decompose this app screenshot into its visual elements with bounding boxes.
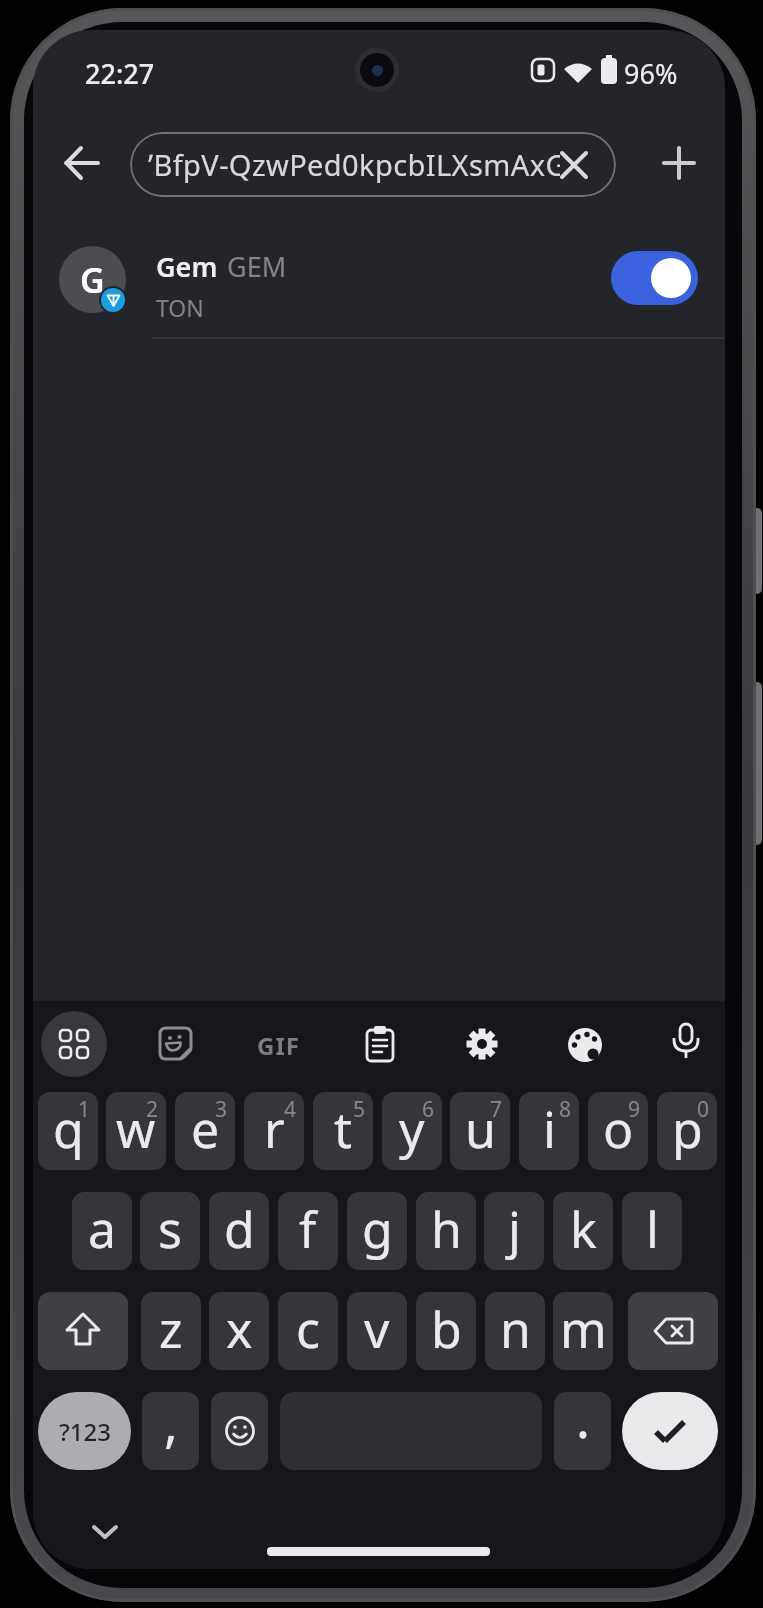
button[interactable]: a [72, 1192, 132, 1270]
button[interactable] [211, 1392, 268, 1470]
button[interactable] [52, 133, 112, 193]
staticText: Gem [156, 248, 218, 285]
staticText: TON [156, 292, 204, 323]
staticText: , [164, 1392, 178, 1457]
button[interactable]: ?123 [38, 1392, 131, 1470]
button[interactable] [158, 1026, 194, 1062]
staticText: G [80, 257, 105, 303]
staticText: ʼBfpV-QzwPed0kpcbILXsmAxG [148, 145, 560, 184]
staticText: b [431, 1295, 462, 1363]
button[interactable]: t [313, 1092, 373, 1170]
button[interactable]: r [244, 1092, 304, 1170]
button[interactable]: d [209, 1192, 269, 1270]
staticText: 96% [624, 55, 678, 92]
button[interactable]: j [484, 1192, 544, 1270]
button[interactable]: l [622, 1192, 682, 1270]
staticText: 1 [78, 1095, 91, 1124]
staticText: 2 [146, 1095, 159, 1124]
button[interactable] [81, 1508, 129, 1556]
staticText: 4 [284, 1095, 297, 1124]
button[interactable] [38, 1292, 128, 1370]
staticText: 8 [559, 1095, 572, 1124]
button[interactable]: e [175, 1092, 235, 1170]
button[interactable]: x [209, 1292, 269, 1370]
staticText: y [399, 1095, 425, 1163]
staticText: 6 [422, 1095, 435, 1124]
button[interactable] [464, 1026, 500, 1062]
staticText: 0 [697, 1095, 710, 1124]
button[interactable] [649, 133, 709, 193]
staticText: 5 [353, 1095, 366, 1124]
staticText: a [88, 1195, 117, 1263]
staticText: 3 [215, 1095, 228, 1124]
staticText: GIF [257, 1029, 300, 1059]
staticText: . [576, 1392, 590, 1453]
button[interactable]: i [519, 1092, 579, 1170]
button[interactable]: y [382, 1092, 442, 1170]
button[interactable]: h [416, 1192, 476, 1270]
button[interactable]: . [554, 1392, 611, 1470]
staticText: n [500, 1295, 531, 1363]
staticText: 9 [628, 1095, 641, 1124]
staticText: t [334, 1095, 353, 1163]
button[interactable]: b [416, 1292, 476, 1370]
button[interactable]: u [450, 1092, 510, 1170]
staticText: c [296, 1295, 320, 1363]
staticText: s [158, 1195, 182, 1263]
button[interactable]: ʼBfpV-QzwPed0kpcbILXsmAxG [130, 132, 616, 197]
button[interactable] [611, 251, 698, 305]
button[interactable]: z [141, 1292, 201, 1370]
staticText: v [364, 1295, 390, 1363]
button[interactable]: k [553, 1192, 613, 1270]
staticText: u [465, 1095, 496, 1163]
staticText: 7 [490, 1095, 503, 1124]
staticText: z [159, 1295, 183, 1363]
button[interactable]: G [33, 235, 725, 337]
staticText: 22:27 [85, 55, 155, 92]
button[interactable]: , [142, 1392, 199, 1470]
staticText: e [191, 1095, 220, 1163]
button[interactable]: GIF [252, 1029, 304, 1059]
staticText: f [299, 1195, 317, 1263]
staticText: h [431, 1195, 462, 1263]
button[interactable]: v [347, 1292, 407, 1370]
staticText: GEM [227, 248, 287, 285]
button[interactable]: w [106, 1092, 166, 1170]
staticText: m [560, 1295, 607, 1363]
button[interactable]: f [278, 1192, 338, 1270]
button[interactable] [362, 1026, 398, 1062]
staticText: r [264, 1095, 285, 1163]
button[interactable]: g [347, 1192, 407, 1270]
staticText: k [570, 1195, 597, 1263]
staticText: l [646, 1195, 659, 1263]
staticText: g [362, 1195, 393, 1263]
staticText: o [603, 1095, 634, 1163]
button[interactable] [670, 1024, 702, 1064]
button[interactable]: m [553, 1292, 613, 1370]
button[interactable] [566, 1026, 604, 1064]
staticText: w [116, 1095, 156, 1163]
staticText: ?123 [59, 1415, 111, 1448]
button[interactable] [41, 1011, 107, 1077]
button[interactable]: o [588, 1092, 648, 1170]
staticText: i [543, 1095, 556, 1163]
button[interactable] [622, 1392, 718, 1470]
button[interactable]: q [38, 1092, 98, 1170]
button[interactable]: p [657, 1092, 717, 1170]
staticText: p [672, 1095, 703, 1163]
button[interactable]: c [278, 1292, 338, 1370]
staticText: d [224, 1195, 255, 1263]
button[interactable] [628, 1292, 718, 1370]
staticText: q [53, 1095, 84, 1163]
button[interactable]: s [140, 1192, 200, 1270]
staticText: x [226, 1295, 253, 1363]
staticText: j [508, 1195, 521, 1263]
button[interactable]: n [485, 1292, 545, 1370]
